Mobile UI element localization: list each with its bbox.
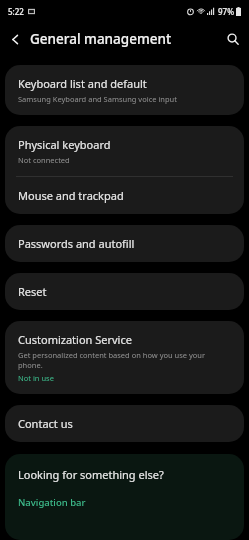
button[interactable]: Reset bbox=[5, 273, 244, 310]
staticText: Reset bbox=[18, 284, 47, 299]
button[interactable]: Mouse and trackpad bbox=[5, 177, 244, 214]
button[interactable]: Navigation bar bbox=[18, 491, 231, 514]
staticText: 5:22 bbox=[8, 6, 24, 17]
button[interactable]: Physical keyboard bbox=[5, 126, 244, 176]
staticText: Not connected bbox=[18, 155, 70, 165]
button[interactable]: Contact us bbox=[5, 405, 244, 442]
button[interactable]: Customization Service bbox=[5, 321, 244, 394]
button[interactable]: Back bbox=[0, 24, 30, 54]
staticText: Navigation bar bbox=[18, 496, 86, 509]
staticText: Keyboard list and default bbox=[18, 76, 147, 91]
button[interactable]: Keyboard list and default bbox=[5, 65, 244, 115]
staticText: 97% bbox=[218, 6, 234, 17]
staticText: Contact us bbox=[18, 416, 73, 431]
staticText: Physical keyboard bbox=[18, 137, 111, 152]
staticText: Get personalized content based on how yo… bbox=[18, 350, 231, 370]
button[interactable]: Passwords and autofill bbox=[5, 225, 244, 262]
staticText: General management bbox=[30, 30, 172, 48]
staticText: Customization Service bbox=[18, 332, 132, 347]
staticText: Passwords and autofill bbox=[18, 236, 135, 251]
staticText: Looking for something else? bbox=[18, 467, 164, 482]
button[interactable]: Search bbox=[217, 23, 249, 55]
staticText: Samsung Keyboard and Samsung voice input bbox=[18, 94, 177, 104]
staticText: Mouse and trackpad bbox=[18, 188, 124, 203]
staticText: Not in use bbox=[18, 373, 54, 383]
